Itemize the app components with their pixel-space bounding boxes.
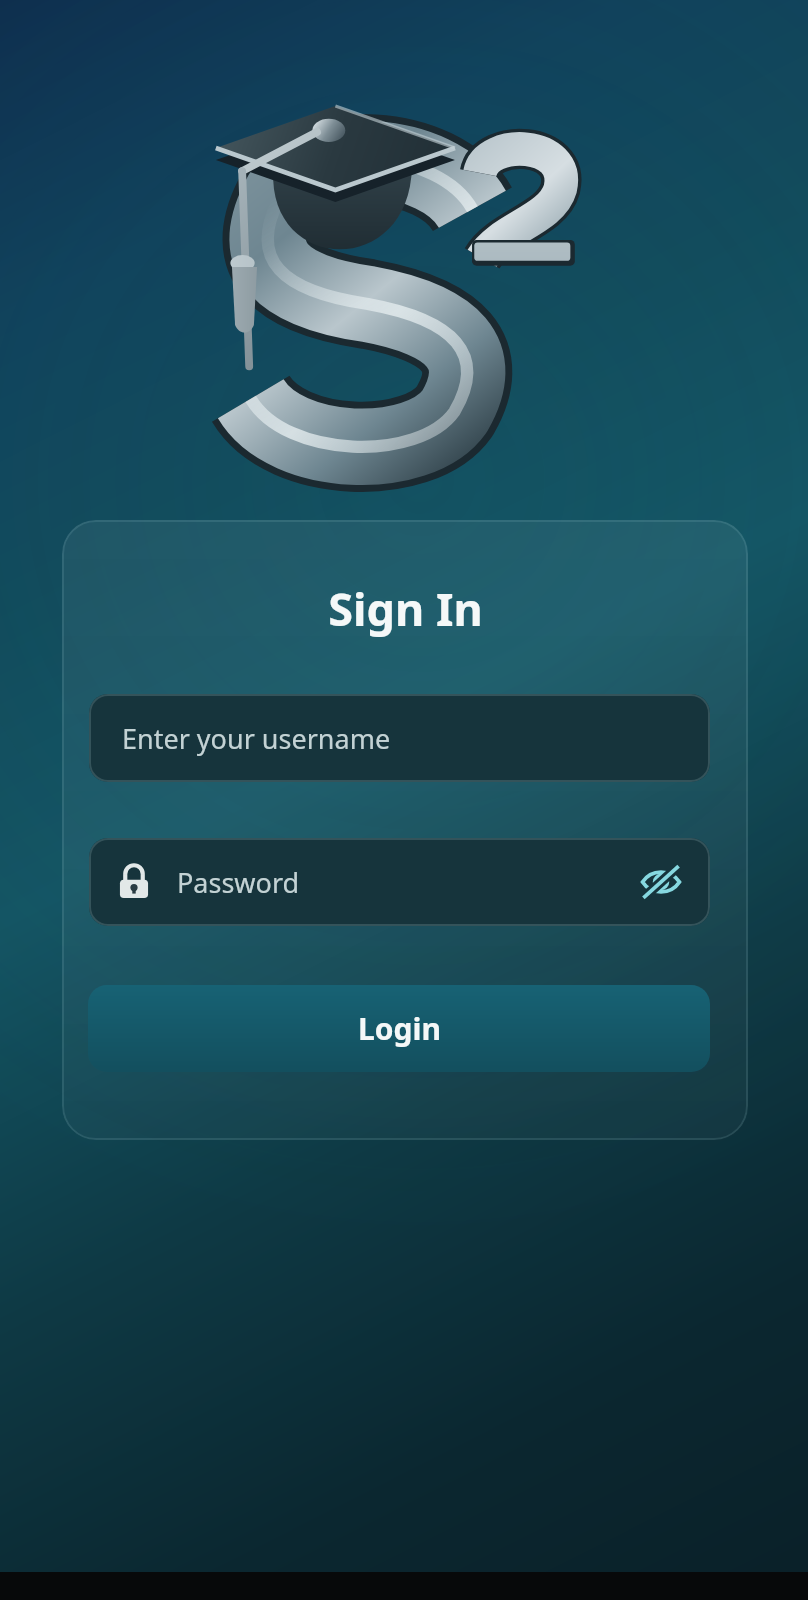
button[interactable]: Enter your username — [89, 694, 710, 782]
button[interactable]: Login — [88, 985, 710, 1072]
staticText: Enter your username — [122, 720, 391, 757]
staticText: Sign In — [328, 578, 483, 639]
button[interactable]: Show password — [634, 855, 688, 909]
staticText: Login — [358, 1008, 441, 1049]
staticText: Password — [177, 864, 300, 901]
button[interactable]: Password — [89, 838, 710, 926]
